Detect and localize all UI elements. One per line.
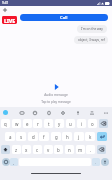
button[interactable]: Tool 3 — [46, 110, 52, 116]
button[interactable]: Call — [20, 14, 108, 21]
button[interactable]: i — [77, 119, 86, 128]
button[interactable]: j — [74, 132, 84, 141]
button[interactable]: w — [12, 119, 21, 128]
button[interactable]: q — [1, 119, 10, 128]
staticText: z — [15, 147, 18, 153]
button[interactable]: object, 3 ways, ref — [74, 36, 108, 44]
staticText: f — [43, 134, 45, 140]
button[interactable]: Enter — [97, 132, 107, 141]
staticText: Audio message — [44, 92, 68, 96]
staticText: b — [57, 147, 60, 153]
button[interactable]: z — [12, 145, 21, 154]
staticText: 9:41 — [2, 1, 9, 5]
button[interactable]: m — [76, 145, 85, 154]
button[interactable]: v — [44, 145, 53, 154]
button[interactable]: k — [85, 132, 95, 141]
button[interactable]: o — [88, 119, 97, 128]
staticText: a — [9, 134, 12, 140]
button[interactable]: u — [66, 119, 75, 128]
button[interactable]: a — [5, 132, 15, 141]
staticText: y — [58, 121, 61, 127]
button[interactable]: Shift — [1, 145, 10, 154]
staticText: . — [95, 160, 97, 165]
button[interactable]: h — [62, 132, 72, 141]
button[interactable]: d — [28, 132, 38, 141]
button[interactable]: t — [44, 119, 53, 128]
staticText: d — [32, 134, 35, 140]
button[interactable]: . — [86, 145, 95, 154]
staticText: m — [78, 147, 83, 153]
staticText: . — [90, 147, 92, 153]
staticText: LIVE — [4, 17, 15, 24]
staticText: n — [68, 147, 71, 153]
button[interactable]: Tool 4 — [60, 110, 66, 116]
button[interactable]: New chat — [1, 6, 9, 14]
button[interactable]: Emoji — [2, 158, 10, 166]
button[interactable]: Tool 5 — [75, 110, 81, 116]
button[interactable]: y — [55, 119, 64, 128]
button[interactable]: . — [92, 158, 100, 166]
button[interactable]: f — [39, 132, 49, 141]
button[interactable]: Tool 6 — [89, 110, 95, 116]
staticText: , — [13, 160, 15, 165]
staticText: x — [25, 147, 28, 153]
staticText: k — [89, 134, 92, 140]
staticText: Tap to play message — [41, 100, 71, 104]
button[interactable]: c — [33, 145, 42, 154]
button[interactable]: g — [51, 132, 61, 141]
staticText: t — [48, 121, 50, 127]
button[interactable]: Key — [97, 145, 106, 154]
button[interactable]: b — [54, 145, 63, 154]
staticText: object, 3 ways, ref — [78, 38, 105, 42]
button[interactable]: Backspace — [99, 119, 108, 128]
button[interactable]: Tool 7 — [103, 110, 109, 116]
button[interactable]: e — [23, 119, 32, 128]
button[interactable]: s — [16, 132, 26, 141]
staticText: w — [15, 121, 19, 127]
staticText: Call — [60, 15, 68, 21]
staticText: s — [20, 134, 23, 140]
button[interactable]: Voice input — [101, 158, 109, 166]
staticText: r — [37, 121, 39, 127]
button[interactable]: Play message — [52, 83, 60, 91]
button[interactable]: r — [33, 119, 42, 128]
staticText: i — [81, 121, 83, 127]
staticText: u — [69, 121, 72, 127]
staticText: j — [78, 134, 80, 140]
button[interactable]: Tool 2 — [32, 110, 38, 116]
button[interactable]: , — [10, 158, 18, 166]
staticText: e — [26, 121, 29, 127]
staticText: h — [66, 134, 69, 140]
button[interactable]: Logo — [2, 16, 17, 24]
button[interactable]: Google — [3, 110, 8, 115]
button[interactable]: x — [22, 145, 31, 154]
staticText: q — [4, 121, 7, 127]
staticText: v — [47, 147, 50, 153]
staticText: c — [36, 147, 39, 153]
staticText: g — [55, 134, 58, 140]
staticText: I'm on the way — [81, 27, 103, 31]
staticText: o — [91, 121, 94, 127]
button[interactable]: I'm on the way — [77, 25, 107, 33]
button[interactable]: Tool 1 — [19, 110, 25, 116]
button[interactable]: n — [65, 145, 74, 154]
